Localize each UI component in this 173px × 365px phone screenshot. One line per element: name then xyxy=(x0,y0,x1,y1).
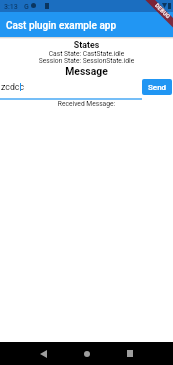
button[interactable]: Recents xyxy=(115,342,145,365)
staticText: Cast State: CastState.idle xyxy=(0,50,173,58)
staticText: Send xyxy=(148,83,167,92)
staticText: Session State: SessionState.idle xyxy=(0,57,173,65)
button[interactable]: Back xyxy=(28,342,58,365)
staticText: Message xyxy=(0,65,173,77)
staticText: G xyxy=(24,3,29,11)
staticText: Received Message: xyxy=(0,100,173,108)
staticText: DEBUG xyxy=(153,2,172,21)
button[interactable]: Send xyxy=(142,79,172,95)
staticText: States xyxy=(0,40,173,50)
staticText: zcdcc xyxy=(1,82,25,92)
staticText: Cast plugin example app xyxy=(6,20,117,32)
staticText: 3:13 xyxy=(4,3,18,11)
button[interactable]: Home xyxy=(72,342,102,365)
